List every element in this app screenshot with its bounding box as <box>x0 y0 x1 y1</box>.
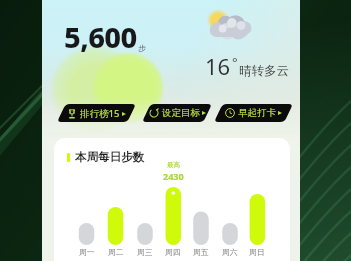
staticText: 周四 <box>165 247 181 257</box>
staticText: 周二 <box>108 247 124 257</box>
button[interactable]: 排行榜15 <box>57 104 136 122</box>
staticText: 排行榜15 <box>80 107 120 120</box>
staticText: 周一 <box>79 247 95 257</box>
staticText: 5,600 <box>64 17 137 56</box>
staticText: 晴转多云 <box>239 63 289 79</box>
staticText: 周六 <box>222 247 238 257</box>
staticText: 2430 <box>163 170 184 182</box>
staticText: 本周每日步数 <box>75 150 144 164</box>
staticText: 16 <box>205 51 231 81</box>
staticText: 周五 <box>193 247 209 257</box>
button[interactable]: 设定目标 <box>142 104 212 122</box>
staticText: 周日 <box>249 247 265 257</box>
button[interactable]: 早起打卡 <box>214 104 293 122</box>
staticText: ° <box>232 53 238 71</box>
staticText: 设定目标 <box>162 107 200 119</box>
staticText: 早起打卡 <box>238 107 276 119</box>
staticText: 周三 <box>137 247 153 257</box>
staticText: 最高 <box>167 161 180 169</box>
staticText: 步 <box>138 43 146 53</box>
